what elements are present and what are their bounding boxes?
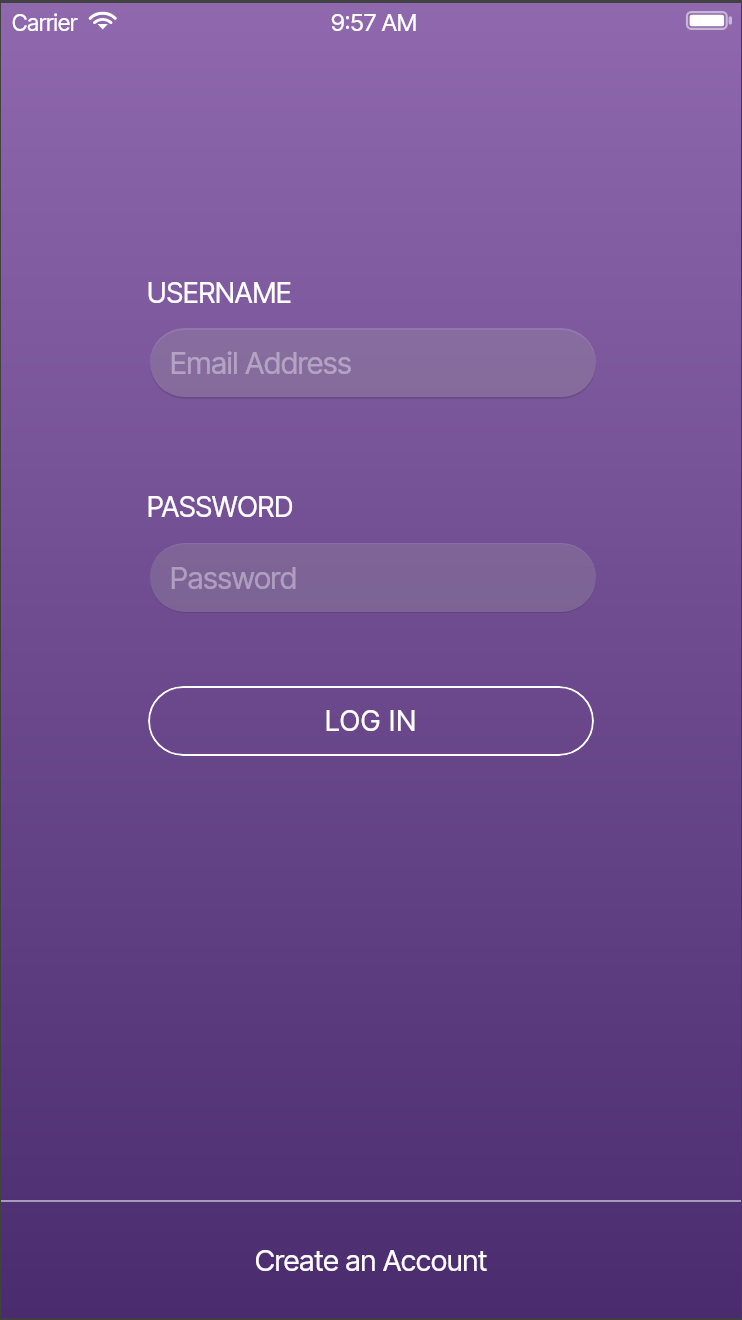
staticText: PASSWORD	[147, 490, 293, 524]
staticText: LOG IN	[325, 704, 418, 738]
button[interactable]: Email Address	[150, 328, 596, 397]
other: Wi-Fi signal	[88, 9, 118, 33]
staticText: 9:57 AM	[331, 8, 418, 37]
staticText: Password	[170, 560, 297, 596]
staticText: Carrier	[12, 9, 78, 36]
button[interactable]: Create an Account	[1, 1202, 741, 1318]
staticText: USERNAME	[147, 276, 292, 310]
staticText: Create an Account	[255, 1243, 488, 1278]
button[interactable]: LOG IN	[148, 686, 594, 756]
button[interactable]: Password	[150, 543, 596, 612]
other: Battery full	[683, 8, 733, 32]
staticText: Email Address	[170, 345, 352, 381]
